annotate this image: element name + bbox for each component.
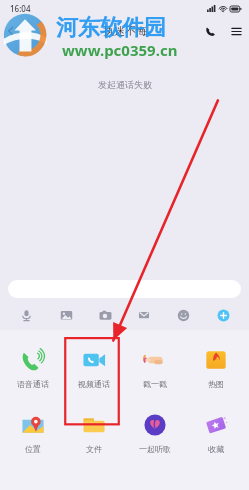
- staticText: 发起通话失败: [98, 79, 152, 90]
- button[interactable]: Video: [131, 304, 157, 326]
- button[interactable]: 位置: [5, 409, 61, 456]
- button[interactable]: Back: [0, 16, 29, 46]
- button[interactable]: Call: [197, 16, 223, 46]
- staticText: 执迷不悔: [103, 24, 147, 38]
- button[interactable]: Emoji: [170, 304, 196, 326]
- button[interactable]: [8, 280, 241, 298]
- staticText: www.pc0359.cn: [62, 40, 178, 60]
- staticText: 16:04: [10, 3, 31, 14]
- button[interactable]: Camera: [92, 304, 118, 326]
- button[interactable]: 文件: [66, 409, 122, 456]
- button[interactable]: 语音通话: [5, 344, 61, 391]
- button[interactable]: 视频通话: [66, 344, 122, 391]
- button[interactable]: More: [210, 304, 236, 326]
- button[interactable]: Menu: [223, 16, 249, 46]
- staticText: 河东软件园: [56, 14, 166, 42]
- button[interactable]: 一起听歌: [127, 409, 183, 456]
- staticText: 热图: [208, 379, 224, 389]
- button[interactable]: 热图: [188, 344, 244, 391]
- staticText: 语音通话: [17, 379, 49, 389]
- staticText: 2: [17, 25, 23, 37]
- button[interactable]: Photo: [53, 304, 79, 326]
- staticText: 视频通话: [78, 379, 110, 389]
- staticText: 位置: [25, 444, 41, 454]
- staticText: 文件: [86, 444, 102, 454]
- staticText: 一起听歌: [139, 444, 171, 454]
- staticText: 戳一戳: [143, 379, 167, 389]
- staticText: 收藏: [208, 444, 224, 454]
- button[interactable]: 收藏: [188, 409, 244, 456]
- button[interactable]: 戳一戳: [127, 344, 183, 391]
- button[interactable]: Voice message: [13, 304, 39, 326]
